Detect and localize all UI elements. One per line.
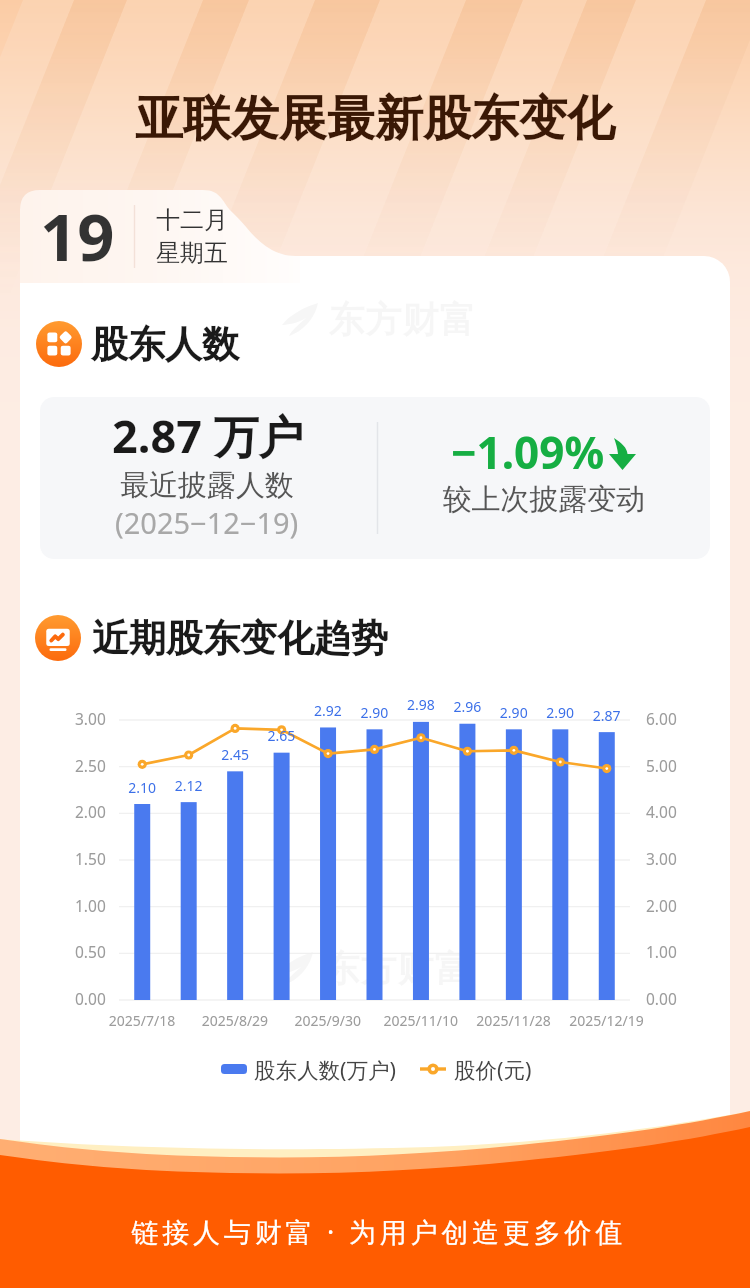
button[interactable]: 股东人数与股价趋势图 — [60, 690, 700, 1030]
button[interactable]: 最近披露人数 2.87 万户, 较上次披露变动 -1.09% — [40, 397, 710, 559]
button[interactable]: 图例 股价(元) — [410, 1052, 545, 1086]
button[interactable]: 图例 股东人数(万户) — [210, 1052, 400, 1086]
button[interactable]: 日期 12月19日 星期五 — [20, 190, 300, 283]
button[interactable]: 股东人数 — [36, 318, 286, 370]
button[interactable]: 链接人与财富 为用户创造更多价值 — [120, 1205, 630, 1255]
button[interactable]: 近期股东变化趋势 — [35, 612, 395, 664]
